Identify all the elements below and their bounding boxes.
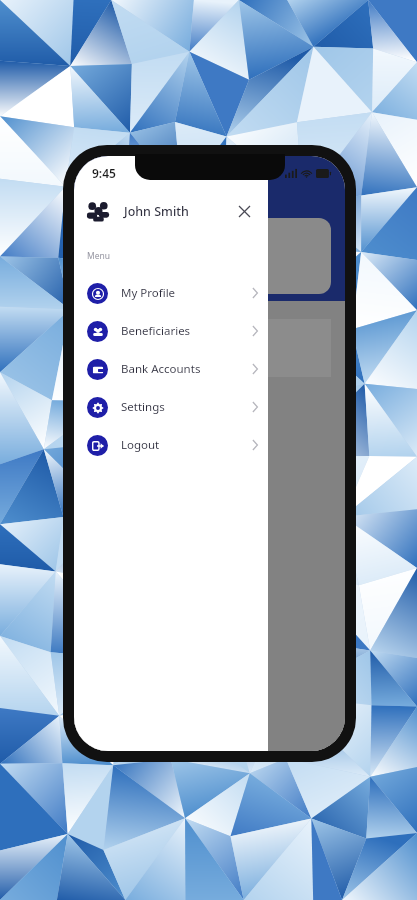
button[interactable]: Settings	[74, 388, 268, 426]
button[interactable]: John Smith	[74, 186, 268, 236]
staticText: 9:45	[92, 165, 116, 181]
button[interactable]: Close menu	[232, 199, 256, 223]
staticText: Beneficiaries	[121, 323, 252, 339]
button[interactable]: Logout	[74, 426, 268, 464]
staticText: My Profile	[121, 285, 252, 301]
button[interactable]: Beneficiaries	[74, 312, 268, 350]
button[interactable]: My Profile	[74, 274, 268, 312]
staticText: John Smith	[124, 203, 232, 220]
staticText: Logout	[121, 437, 252, 453]
button[interactable]: Bank Accounts	[74, 350, 268, 388]
staticText: Bank Accounts	[121, 361, 252, 377]
staticText: Settings	[121, 399, 252, 415]
staticText: Menu	[87, 250, 111, 262]
